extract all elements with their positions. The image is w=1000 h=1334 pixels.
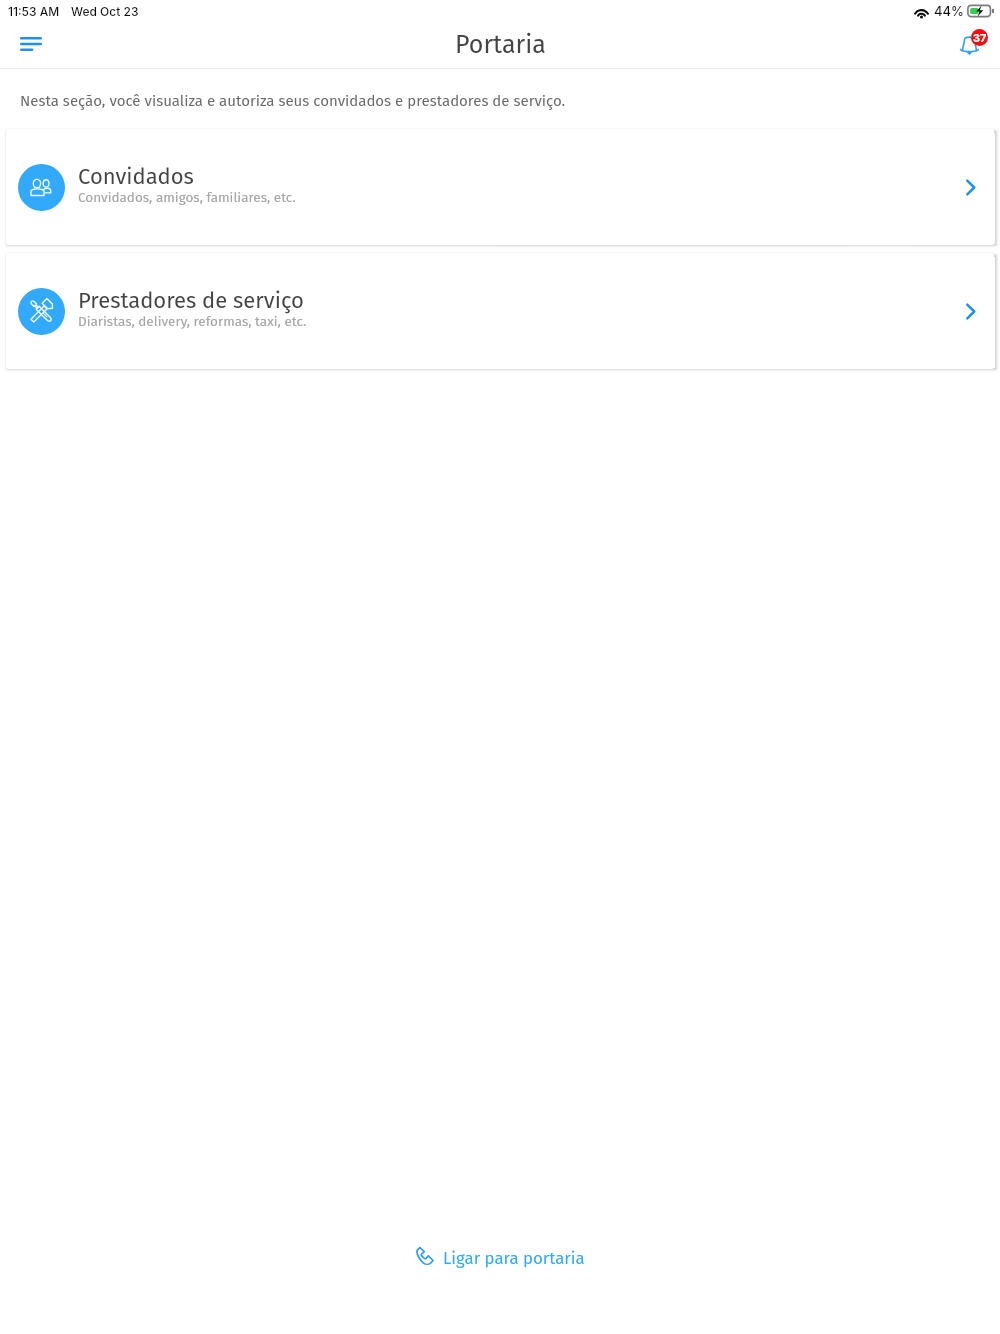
staticText: Ligar para portaria	[443, 1248, 585, 1268]
staticText: 37	[973, 31, 987, 44]
staticText: Convidados	[78, 163, 194, 189]
button[interactable]: Open navigation menu	[4, 22, 52, 68]
staticText: Nesta seção, você visualiza e autoriza s…	[20, 92, 566, 110]
staticText: Convidados, amigos, familiares, etc.	[78, 189, 296, 205]
button[interactable]: Notifications, 37 unread	[948, 22, 996, 68]
staticText: 44%	[934, 3, 964, 19]
staticText: Prestadores de serviço	[78, 287, 304, 313]
staticText: Diaristas, delivery, reformas, taxi, etc…	[78, 313, 307, 329]
button[interactable]: Convidados	[6, 129, 994, 245]
button[interactable]: Ligar para portaria	[391, 1240, 609, 1276]
staticText: 11:53 AM	[8, 4, 60, 19]
button[interactable]: Prestadores de serviço	[6, 253, 994, 369]
staticText: Wed Oct 23	[71, 4, 139, 19]
staticText: Portaria	[455, 30, 546, 60]
